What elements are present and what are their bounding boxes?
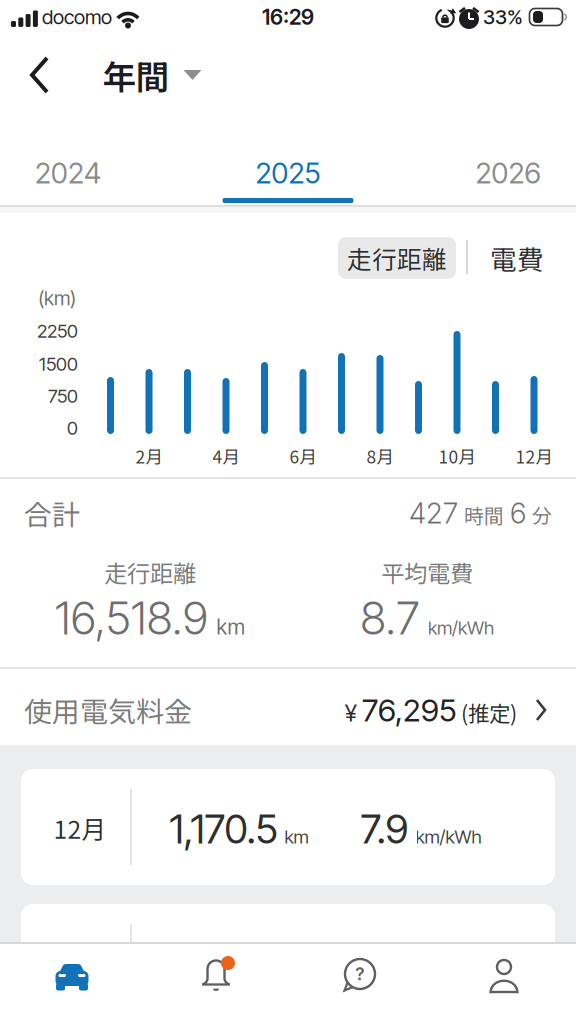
staticText: docomo: [42, 5, 112, 29]
button[interactable]: 電費: [477, 237, 557, 279]
staticText: ¥: [345, 699, 357, 727]
staticText: 2026: [475, 156, 540, 190]
staticText: km: [284, 825, 308, 848]
staticText: 10月: [438, 443, 475, 469]
button[interactable]: 2024: [8, 147, 128, 199]
staticText: 2024: [35, 156, 101, 190]
staticText: 16,518.9: [54, 591, 208, 645]
staticText: 平均電費: [381, 555, 473, 589]
button[interactable]: 走行距離: [338, 237, 456, 279]
staticText: 16:29: [262, 4, 314, 30]
staticText: 2月: [135, 443, 162, 469]
staticText: 7.9: [360, 940, 408, 988]
staticText: 8.7: [360, 591, 420, 645]
button[interactable]: 2026: [448, 147, 568, 199]
staticText: 12月: [53, 810, 106, 846]
staticText: 分: [532, 500, 552, 529]
staticText: 750: [48, 385, 78, 407]
staticText: 電費: [490, 239, 544, 277]
staticText: 1,170.5: [169, 940, 277, 988]
staticText: 12月: [515, 443, 552, 469]
button[interactable]: 12月: [21, 769, 555, 885]
staticText: 12月: [53, 945, 106, 981]
staticText: 合計: [24, 493, 80, 533]
staticText: 使用電気料金: [24, 690, 192, 730]
button[interactable]: 2025: [222, 147, 354, 199]
staticText: 走行距離: [347, 240, 447, 276]
staticText: 4月: [212, 443, 239, 469]
staticText: ?: [355, 963, 364, 984]
staticText: 6: [510, 496, 526, 530]
staticText: 6月: [289, 443, 316, 469]
button[interactable]: [0, 944, 144, 1012]
staticText: 年間: [102, 51, 168, 99]
button[interactable]: ?: [288, 944, 432, 1012]
staticText: 76,295: [362, 691, 456, 729]
button[interactable]: 12月: [21, 904, 555, 1020]
button[interactable]: 年間: [102, 51, 201, 99]
staticText: 走行距離: [104, 555, 196, 589]
staticText: 427: [409, 496, 458, 530]
staticText: 2025: [255, 156, 320, 190]
staticText: 1500: [39, 353, 78, 375]
button[interactable]: [23, 53, 57, 97]
staticText: (km): [38, 286, 76, 310]
staticText: 33%: [483, 5, 523, 29]
staticText: 0: [67, 417, 78, 439]
staticText: km/kWh: [415, 825, 481, 848]
button[interactable]: [144, 944, 288, 1012]
button[interactable]: [432, 944, 576, 1012]
staticText: km/kWh: [428, 616, 494, 639]
staticText: 8月: [366, 443, 393, 469]
button[interactable]: 使用電気料金: [0, 669, 576, 743]
staticText: 7.9: [360, 805, 408, 853]
staticText: 2250: [37, 320, 78, 342]
staticText: 1,170.5: [169, 805, 277, 853]
staticText: km: [216, 614, 245, 640]
staticText: (推定): [461, 697, 517, 728]
staticText: 時間: [464, 500, 504, 529]
